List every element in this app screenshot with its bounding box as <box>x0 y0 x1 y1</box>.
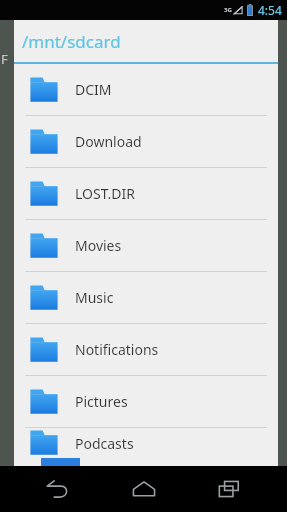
staticText: Movies <box>75 236 122 255</box>
staticText: F <box>1 50 8 68</box>
button[interactable]: LOST.DIR <box>14 168 278 219</box>
button[interactable]: Movies <box>14 220 278 271</box>
staticText: /mnt/sdcard <box>22 30 121 53</box>
button[interactable]: DCIM <box>14 64 278 115</box>
button[interactable]: Home <box>116 466 172 512</box>
button[interactable]: Recent apps <box>201 466 257 512</box>
staticText: Pictures <box>75 392 128 411</box>
button[interactable]: Download <box>14 116 278 167</box>
button[interactable]: Pictures <box>14 376 278 427</box>
button[interactable]: Music <box>14 272 278 323</box>
staticText: 3G <box>224 6 232 14</box>
staticText: Notifications <box>75 340 159 359</box>
button[interactable]: Notifications <box>14 324 278 375</box>
button[interactable]: Podcasts <box>14 428 278 458</box>
staticText: Download <box>75 132 142 151</box>
staticText: Podcasts <box>75 434 134 453</box>
staticText: 4:54 <box>258 2 282 18</box>
button[interactable]: Back <box>30 466 86 512</box>
staticText: Music <box>75 288 114 307</box>
staticText: LOST.DIR <box>75 184 136 203</box>
staticText: DCIM <box>75 80 112 99</box>
